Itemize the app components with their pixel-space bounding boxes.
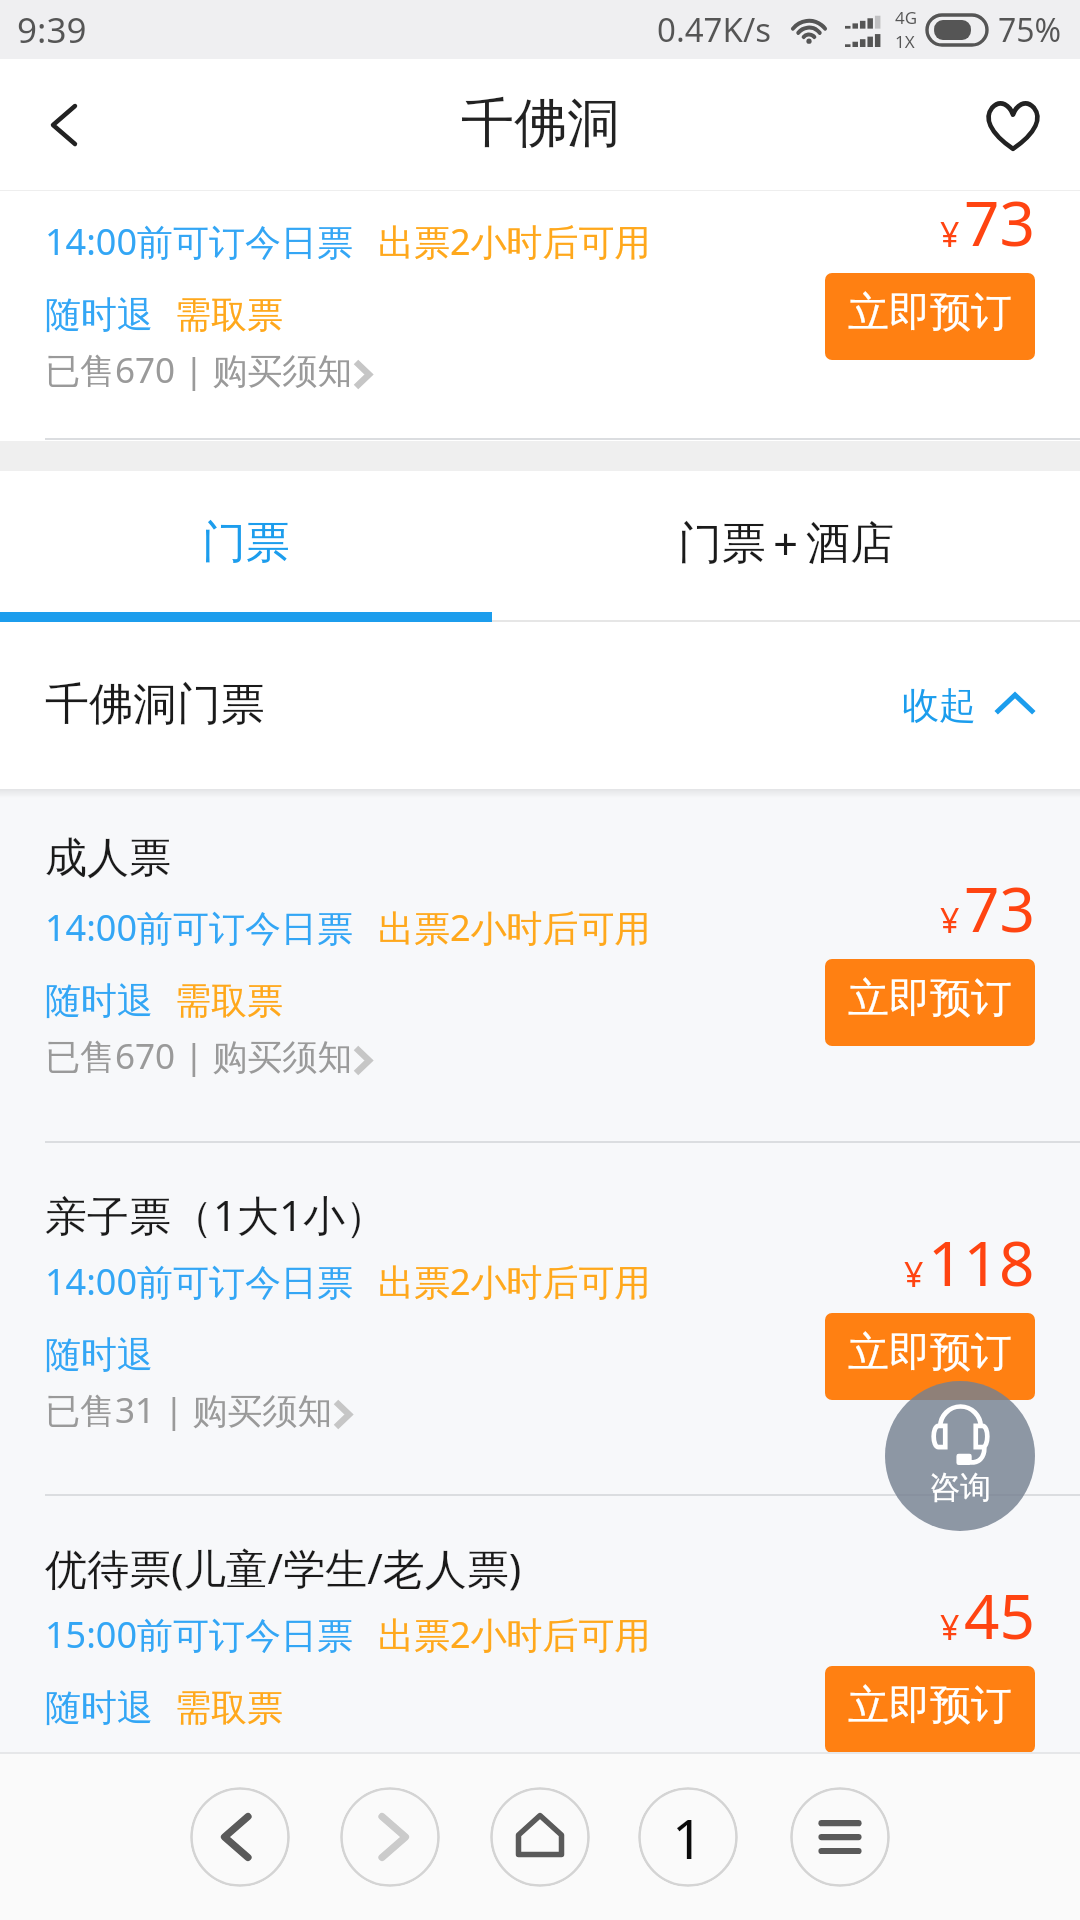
staticText: 随时退 [45,1332,153,1377]
button[interactable]: 收藏 [958,70,1068,180]
staticText: ¥ [940,211,960,257]
staticText: ¥ [904,1251,924,1297]
staticText: 已售670 | 购买须知 [45,346,353,394]
staticText: + [773,513,799,573]
button[interactable]: 门票 [0,471,492,622]
staticText: 随时退 [45,292,153,337]
staticText: 需取票 [175,292,283,337]
staticText: 14:00前可订今日票 [45,217,354,266]
staticText: 1X [895,30,915,53]
staticText: 立即预订 [848,973,1012,1025]
button[interactable]: 上一页 [190,1787,290,1887]
button[interactable] [0,1496,1080,1752]
button[interactable]: 返回 [9,70,119,180]
button[interactable]: 菜单 [790,1787,890,1887]
staticText: 立即预订 [848,1680,1012,1732]
staticText: 千佛洞 [461,90,620,157]
button[interactable]: 立即预订 [825,959,1035,1046]
staticText: 0.47K/s [657,7,771,52]
staticText: 出票2小时后可用 [378,903,651,952]
staticText: 随时退 [45,978,153,1023]
staticText: 成人票 [45,832,171,885]
staticText: 门票 [678,516,766,571]
staticText: 4G [895,6,918,29]
staticText: 酒店 [806,516,894,571]
staticText: 立即预订 [848,287,1012,339]
button[interactable]: 1 [638,1787,738,1887]
staticText: 73 [964,180,1035,264]
staticText: ¥ [940,1604,960,1650]
staticText: 1 [672,1800,704,1875]
staticText: 立即预订 [848,1327,1012,1379]
staticText: 118 [928,1220,1035,1304]
staticText: ¥ [940,897,960,943]
button[interactable] [0,1143,1080,1495]
staticText: 出票2小时后可用 [378,217,651,266]
staticText: 随时退 [45,1685,153,1730]
staticText: 需取票 [175,978,283,1023]
staticText: 优待票(儿童/学生/老人票) [45,1539,522,1596]
staticText: 45 [964,1573,1035,1657]
staticText: 14:00前可订今日票 [45,1257,354,1306]
staticText: 收起 [902,682,976,729]
button[interactable]: 主页 [490,1787,590,1887]
staticText: 需取票 [175,1685,283,1730]
staticText: 14:00前可订今日票 [45,903,354,952]
button[interactable]: 立即预订 [825,1313,1035,1400]
button[interactable]: 下一页 [340,1787,440,1887]
staticText: 咨询 [929,1468,991,1507]
staticText: 出票2小时后可用 [378,1610,651,1659]
staticText: 亲子票（1大1小） [45,1186,388,1243]
staticText: 15:00前可订今日票 [45,1610,354,1659]
staticText: 75% [998,8,1062,52]
button[interactable]: 立即预订 [825,273,1035,360]
staticText: 门票 [202,515,290,570]
button[interactable]: 收起 [902,682,1034,729]
staticText: 已售31 | 购买须知 [45,1386,333,1434]
button[interactable]: 门票 [492,471,1080,622]
button[interactable]: 咨询 [885,1381,1035,1531]
button[interactable] [0,789,1080,1141]
staticText: 千佛洞门票 [45,677,265,732]
staticText: 已售670 | 购买须知 [45,1032,353,1080]
button[interactable]: 立即预订 [825,1666,1035,1753]
staticText: 出票2小时后可用 [378,1257,651,1306]
staticText: 73 [964,866,1035,950]
staticText: 9:39 [17,6,87,54]
